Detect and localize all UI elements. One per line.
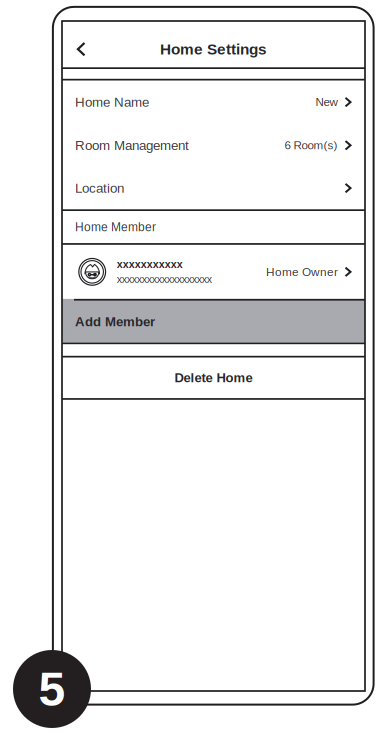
staticText: Home Settings xyxy=(160,41,267,58)
staticText: Add Member xyxy=(75,314,155,329)
staticText: New xyxy=(315,96,337,109)
staticText: Delete Home xyxy=(174,370,252,385)
staticText: Home Owner xyxy=(266,265,338,278)
staticText: 5 xyxy=(38,662,65,716)
button[interactable]: Add Member xyxy=(62,299,365,342)
staticText: Home Name xyxy=(75,95,149,110)
button[interactable]: Delete Home xyxy=(62,357,365,398)
staticText: Home Member xyxy=(75,220,156,234)
button[interactable]: Back xyxy=(62,21,97,67)
staticText: 6 Room(s) xyxy=(284,139,337,152)
button[interactable]: Room Management xyxy=(62,124,365,167)
button[interactable]: xxxxxxxxxxx xyxy=(62,245,365,299)
button[interactable]: Home Name xyxy=(62,80,365,124)
staticText: xxxxxxxxxxx xyxy=(117,258,183,270)
button[interactable]: Location xyxy=(62,167,365,209)
staticText: Room Management xyxy=(75,138,189,153)
staticText: xxxxxxxxxxxxxxxxxxx xyxy=(117,273,212,285)
staticText: Location xyxy=(75,181,124,196)
